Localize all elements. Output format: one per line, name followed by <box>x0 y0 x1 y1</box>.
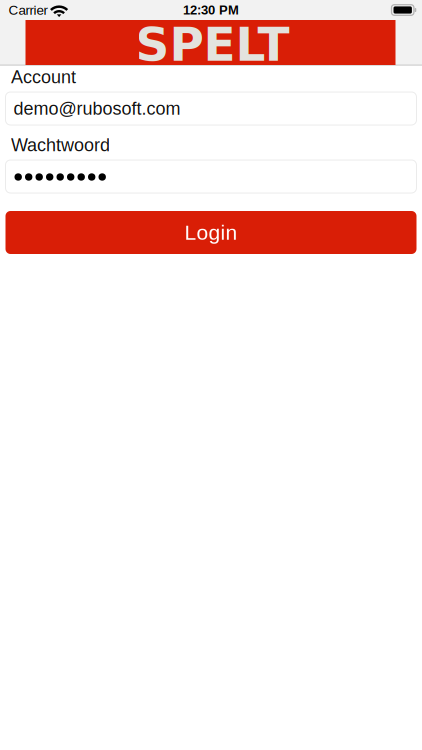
staticText: Login <box>184 221 237 244</box>
staticText: 12:30 PM <box>183 3 239 17</box>
button[interactable]: Login <box>5 211 416 254</box>
staticText: demo@rubosoft.com <box>13 98 180 118</box>
staticText: Account <box>11 67 76 87</box>
staticText: Carrier <box>8 2 47 17</box>
staticText: SPELT <box>135 17 289 72</box>
staticText: Wachtwoord <box>11 135 110 155</box>
